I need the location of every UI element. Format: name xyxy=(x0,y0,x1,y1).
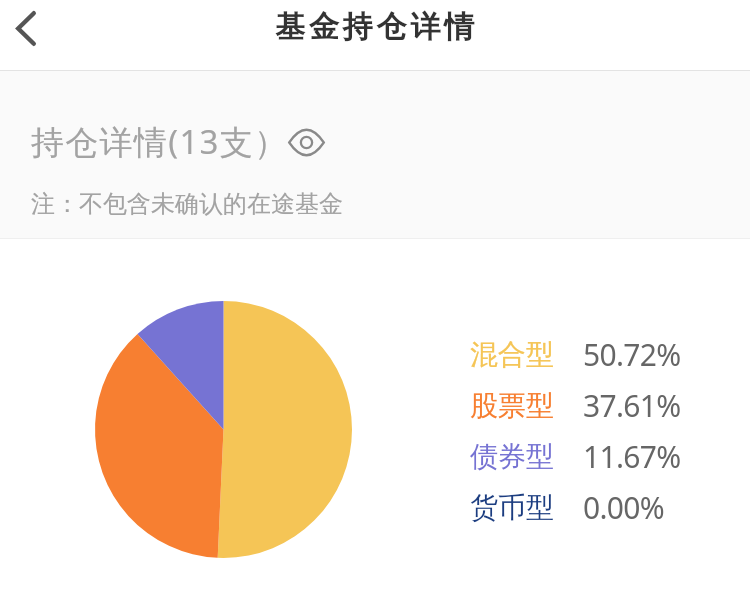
button[interactable]: 债券型 xyxy=(470,431,700,482)
staticText: 11.67% xyxy=(583,436,681,477)
staticText: 持仓详情(13支） xyxy=(31,119,289,164)
button[interactable]: 货币型 xyxy=(470,482,700,533)
button[interactable]: Back xyxy=(0,0,62,58)
staticText: 注：不包含未确认的在途基金 xyxy=(31,189,343,219)
staticText: 股票型 xyxy=(470,388,583,423)
staticText: 基金持仓详情 xyxy=(275,8,478,46)
staticText: 债券型 xyxy=(470,439,583,474)
staticText: 50.72% xyxy=(583,334,681,375)
staticText: 混合型 xyxy=(470,337,583,372)
staticText: 0.00% xyxy=(583,487,664,528)
staticText: 货币型 xyxy=(470,490,583,525)
other: Asset allocation pie chart xyxy=(95,301,352,558)
button[interactable]: Toggle holdings visibility xyxy=(284,122,328,162)
button[interactable]: 股票型 xyxy=(470,380,700,431)
button[interactable]: 混合型 xyxy=(470,329,700,380)
staticText: 37.61% xyxy=(583,385,681,426)
